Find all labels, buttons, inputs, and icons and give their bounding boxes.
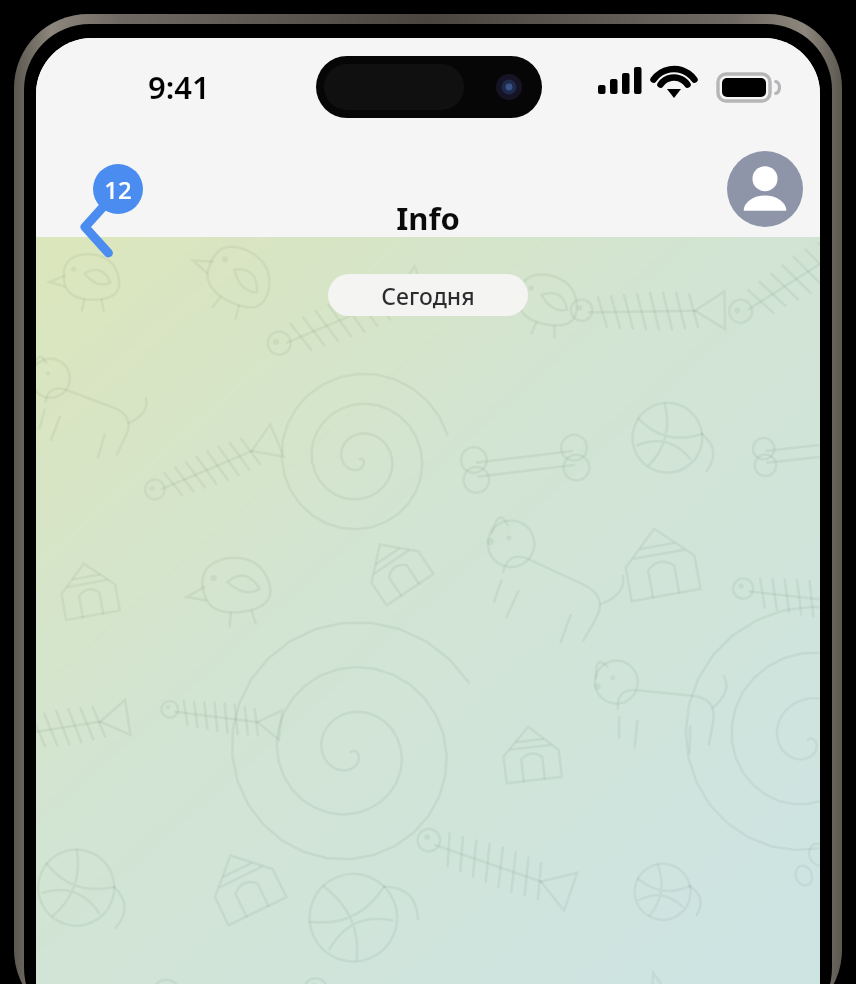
button[interactable]: Profile — [727, 151, 803, 227]
staticText: 12 — [104, 173, 132, 206]
staticText: Сегодня — [381, 280, 475, 311]
button[interactable]: Сегодня — [328, 274, 528, 316]
staticText: Info — [396, 197, 460, 239]
staticText: 9:41 — [148, 66, 210, 108]
button[interactable]: Back — [66, 184, 128, 270]
button[interactable]: 12 — [93, 164, 143, 214]
